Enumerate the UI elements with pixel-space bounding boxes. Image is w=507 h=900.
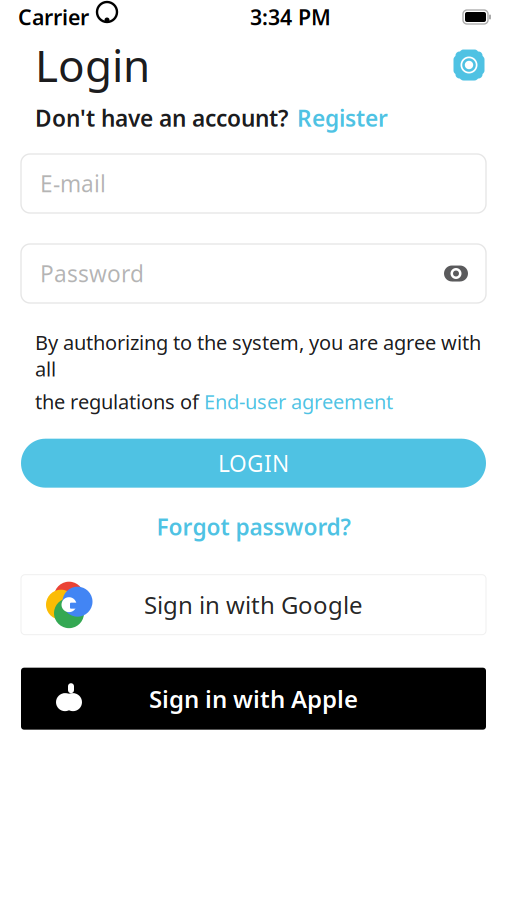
staticText: Password bbox=[40, 258, 144, 288]
staticText: Sign in with Google bbox=[144, 589, 363, 621]
staticText: Register bbox=[297, 103, 388, 133]
button[interactable]: Forgot password? bbox=[21, 511, 486, 543]
staticText: 3:34 PM bbox=[250, 3, 331, 31]
staticText: LOGIN bbox=[218, 448, 289, 478]
staticText: By authorizing to the system, you are ag… bbox=[35, 329, 481, 382]
staticText: Don't have an account? bbox=[35, 103, 288, 133]
staticText: Login bbox=[35, 36, 150, 94]
staticText: E-mail bbox=[40, 168, 106, 198]
staticText: Forgot password? bbox=[156, 512, 350, 542]
button[interactable]: Register bbox=[288, 103, 388, 133]
staticText: End-user agreement bbox=[204, 388, 393, 415]
button[interactable]: Sign in with Apple bbox=[21, 668, 486, 730]
staticText: Sign in with Apple bbox=[149, 683, 358, 715]
button[interactable]: Sign in with Google bbox=[21, 575, 486, 635]
staticText: the regulations of bbox=[35, 388, 199, 415]
button[interactable]: Settings bbox=[447, 43, 491, 87]
button[interactable]: Show password bbox=[436, 253, 476, 293]
button[interactable]: End-user agreement bbox=[199, 388, 393, 415]
staticText: Carrier bbox=[18, 3, 89, 31]
button[interactable]: LOGIN bbox=[21, 439, 486, 488]
